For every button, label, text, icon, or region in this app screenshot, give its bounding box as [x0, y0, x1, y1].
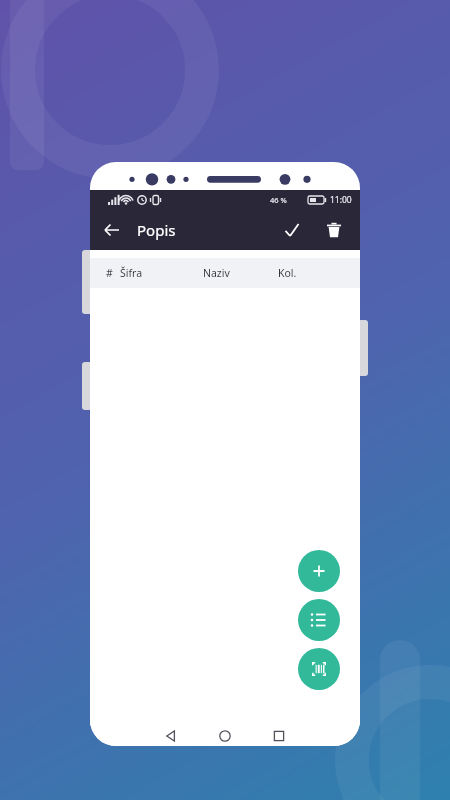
button[interactable]: List: [298, 599, 340, 641]
staticText: #: [106, 266, 113, 280]
button[interactable]: Add: [298, 550, 340, 592]
staticText: Šifra: [120, 266, 143, 280]
staticText: Kol.: [278, 266, 297, 280]
button[interactable]: Back: [96, 214, 128, 246]
staticText: 46 %: [270, 195, 287, 205]
staticText: Popis: [137, 220, 176, 240]
button[interactable]: Delete: [318, 214, 350, 246]
staticText: Naziv: [203, 266, 230, 280]
button[interactable]: Scan barcode: [298, 648, 340, 690]
button[interactable]: Confirm: [276, 214, 308, 246]
button[interactable]: #: [90, 258, 360, 288]
staticText: 11:00: [330, 194, 352, 206]
